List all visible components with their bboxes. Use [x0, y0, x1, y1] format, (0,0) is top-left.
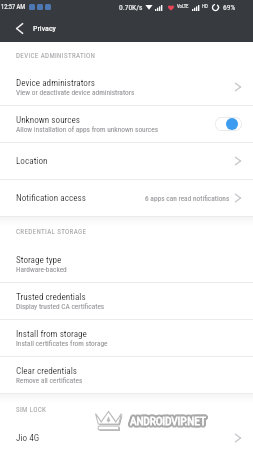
staticText: ANDROIDVIP.NET	[132, 413, 208, 426]
staticText: Jio 4G	[16, 432, 40, 443]
staticText: Notification access	[16, 192, 86, 203]
staticText: Allow installation of apps from unknown …	[16, 125, 159, 134]
staticText: ANDROIDVIP.NET	[130, 414, 206, 427]
staticText: ANDROIDVIP.NET	[128, 414, 204, 427]
button[interactable]: Device administrators	[0, 69, 253, 105]
staticText: ANDROIDVIP.NET	[130, 412, 206, 425]
staticText: Install certificates from storage	[16, 339, 108, 348]
staticText: Storage type	[16, 254, 62, 265]
staticText: Install from storage	[16, 328, 87, 339]
staticText: ANDROIDVIP.NET	[131, 412, 207, 425]
button[interactable]: Install from storage	[0, 320, 253, 356]
button[interactable]: Location	[0, 143, 253, 179]
button[interactable]: Notification access	[0, 180, 253, 216]
staticText: ANDROIDVIP.NET	[130, 416, 206, 429]
staticText: ANDROIDVIP.NET	[131, 414, 207, 427]
staticText: 0.70K/s	[119, 3, 143, 12]
staticText: ANDROIDVIP.NET	[129, 413, 205, 426]
button[interactable]: Jio 4G	[0, 420, 253, 450]
staticText: 69%	[223, 3, 236, 12]
button[interactable]: Back	[0, 14, 33, 42]
button[interactable]: Trusted credentials	[0, 283, 253, 319]
staticText: ANDROIDVIP.NET	[129, 415, 205, 428]
staticText: ANDROIDVIP.NET	[130, 415, 206, 428]
button[interactable]: Unknown sources	[0, 106, 253, 142]
staticText: Clear credentials	[16, 365, 78, 376]
staticText: ANDROIDVIP.NET	[129, 412, 205, 425]
staticText: 12:57 AM	[1, 3, 26, 11]
staticText: Display trusted CA certificates	[16, 302, 105, 311]
staticText: Location	[16, 155, 48, 166]
staticText: CREDENTIAL STORAGE	[16, 228, 87, 236]
staticText: HD	[202, 4, 208, 10]
button[interactable]: Storage type	[0, 246, 253, 282]
staticText: ANDROIDVIP.NET	[128, 415, 204, 428]
staticText: View or deactivate device administrators	[16, 88, 135, 97]
staticText: Unknown sources	[16, 114, 81, 125]
staticText: Hardware-backed	[16, 265, 67, 274]
staticText: ANDROIDVIP.NET	[132, 414, 208, 427]
staticText: ANDROIDVIP.NET	[131, 415, 207, 428]
staticText: Privacy	[33, 24, 56, 33]
staticText: 6 apps can read notifications	[145, 194, 230, 203]
staticText: ANDROIDVIP.NET	[129, 416, 205, 429]
staticText: Device administrators	[16, 77, 95, 88]
staticText: Trusted credentials	[16, 291, 86, 302]
staticText: SIM LOCK	[16, 406, 47, 414]
staticText: ANDROIDVIP.NET	[131, 413, 207, 426]
staticText: Remove all certificates	[16, 376, 83, 385]
staticText: ANDROIDVIP.NET	[131, 416, 207, 429]
staticText: ANDROIDVIP.NET	[132, 415, 208, 428]
staticText: ANDROIDVIP.NET	[128, 413, 204, 426]
button[interactable]: Unknown sources toggle	[215, 117, 242, 131]
button[interactable]: Clear credentials	[0, 357, 253, 393]
staticText: ANDROIDVIP.NET	[130, 413, 206, 426]
staticText: ANDROIDVIP.NET	[129, 414, 205, 427]
staticText: DEVICE ADMINISTRATION	[16, 52, 96, 60]
staticText: VoLTE	[177, 4, 189, 10]
